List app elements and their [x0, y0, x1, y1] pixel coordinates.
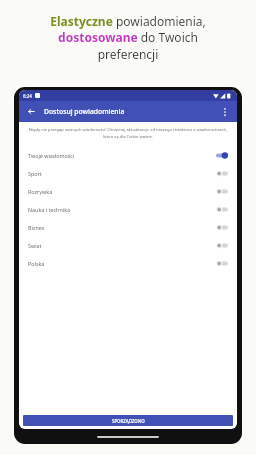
- staticText: Biznes: [28, 224, 45, 231]
- staticText: Elastyczne powiadomienia, dostosowane do…: [10, 13, 246, 63]
- staticText: Polska: [28, 260, 45, 267]
- button[interactable]: Sport: [19, 164, 237, 182]
- staticText: 6:24: [23, 93, 32, 99]
- staticText: Nigdy nie przegap ważnych wiadomości! Ot…: [24, 127, 232, 139]
- button[interactable]: Wstecz: [25, 105, 38, 118]
- button[interactable]: Twoje wiadomości: [19, 146, 237, 164]
- staticText: Nauka i technika: [28, 206, 71, 213]
- button[interactable]: Świat: [19, 236, 237, 254]
- staticText: Sport: [28, 170, 42, 177]
- staticText: Rozrywka: [28, 188, 53, 195]
- button[interactable]: Więcej opcji: [218, 105, 231, 118]
- staticText: Dostosuj powiadomienia: [44, 107, 125, 116]
- button[interactable]: Nauka i technika: [19, 200, 237, 218]
- staticText: Świat: [28, 242, 42, 249]
- button[interactable]: SPORZĄDZONO: [23, 415, 233, 426]
- button[interactable]: Biznes: [19, 218, 237, 236]
- staticText: Twoje wiadomości: [28, 152, 75, 159]
- button[interactable]: Rozrywka: [19, 182, 237, 200]
- staticText: SPORZĄDZONO: [112, 418, 145, 424]
- button[interactable]: Polska: [19, 254, 237, 272]
